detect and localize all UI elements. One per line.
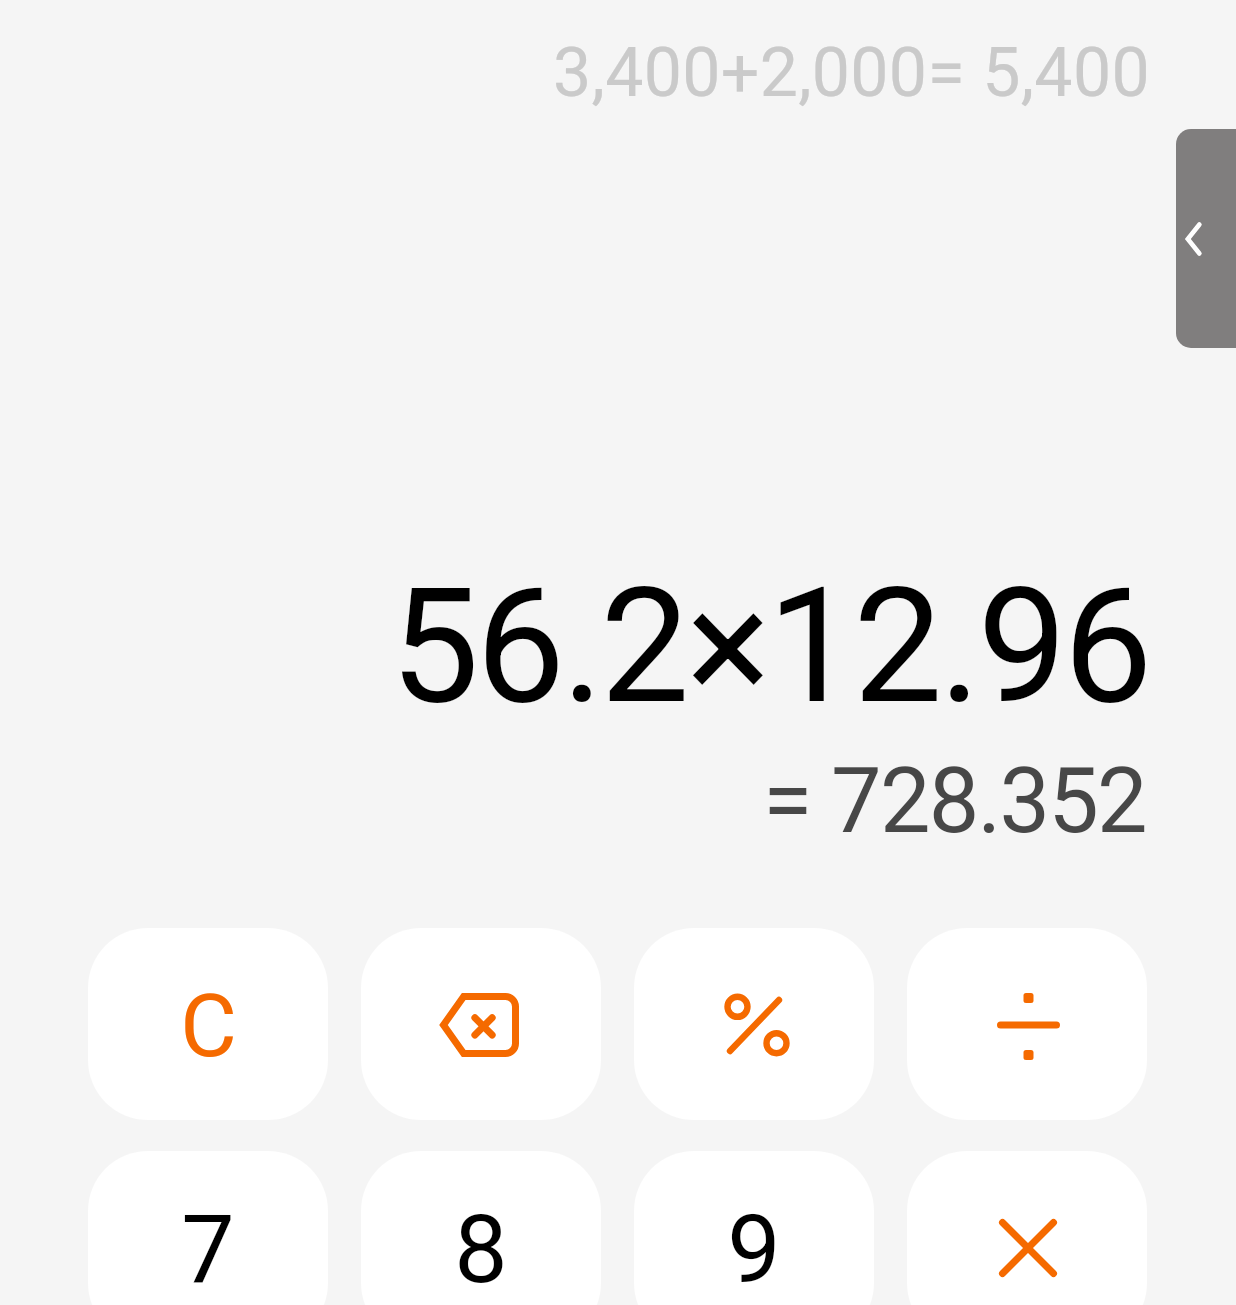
staticText: 3,400+2,000= 5,400 — [553, 33, 1150, 113]
staticText: 56.2×12.96 — [390, 553, 1150, 739]
staticText: 9 — [727, 1194, 781, 1305]
staticText: 8 — [454, 1194, 508, 1305]
button[interactable]: Show history — [1176, 129, 1236, 348]
button[interactable]: 8 — [361, 1151, 601, 1305]
button[interactable]: Backspace — [361, 928, 601, 1120]
staticText: C — [180, 975, 237, 1077]
button[interactable]: 7 — [88, 1151, 328, 1305]
button[interactable]: 9 — [634, 1151, 874, 1305]
staticText: 7 — [181, 1194, 235, 1305]
button[interactable]: Percent — [634, 928, 874, 1120]
button[interactable]: Divide — [907, 928, 1147, 1120]
staticText: = 728.352 — [763, 749, 1146, 854]
button[interactable]: Multiply — [907, 1151, 1147, 1305]
button[interactable]: Clear — [88, 928, 328, 1120]
